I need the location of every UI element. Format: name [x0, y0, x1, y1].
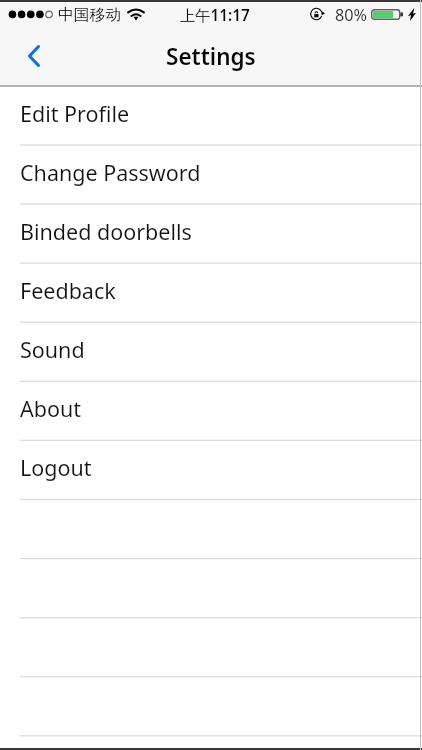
- button[interactable]: Logout: [0, 440, 422, 499]
- staticText: Feedback: [20, 276, 116, 305]
- button[interactable]: Binded doorbells: [0, 204, 422, 263]
- staticText: 80%: [335, 4, 367, 26]
- staticText: 中国移动: [58, 5, 122, 25]
- button[interactable]: Change Password: [0, 145, 422, 204]
- staticText: Change Password: [20, 158, 201, 187]
- button[interactable]: Edit Profile: [0, 86, 422, 145]
- button[interactable]: About: [0, 381, 422, 440]
- staticText: Binded doorbells: [20, 217, 192, 246]
- staticText: Sound: [20, 335, 85, 364]
- staticText: Logout: [20, 453, 92, 482]
- button[interactable]: Sound: [0, 322, 422, 381]
- button[interactable]: Back: [11, 28, 58, 83]
- staticText: Settings: [166, 41, 256, 72]
- staticText: About: [20, 394, 82, 423]
- staticText: 上午11:17: [180, 5, 250, 26]
- button[interactable]: Feedback: [0, 263, 422, 322]
- staticText: Edit Profile: [20, 99, 130, 128]
